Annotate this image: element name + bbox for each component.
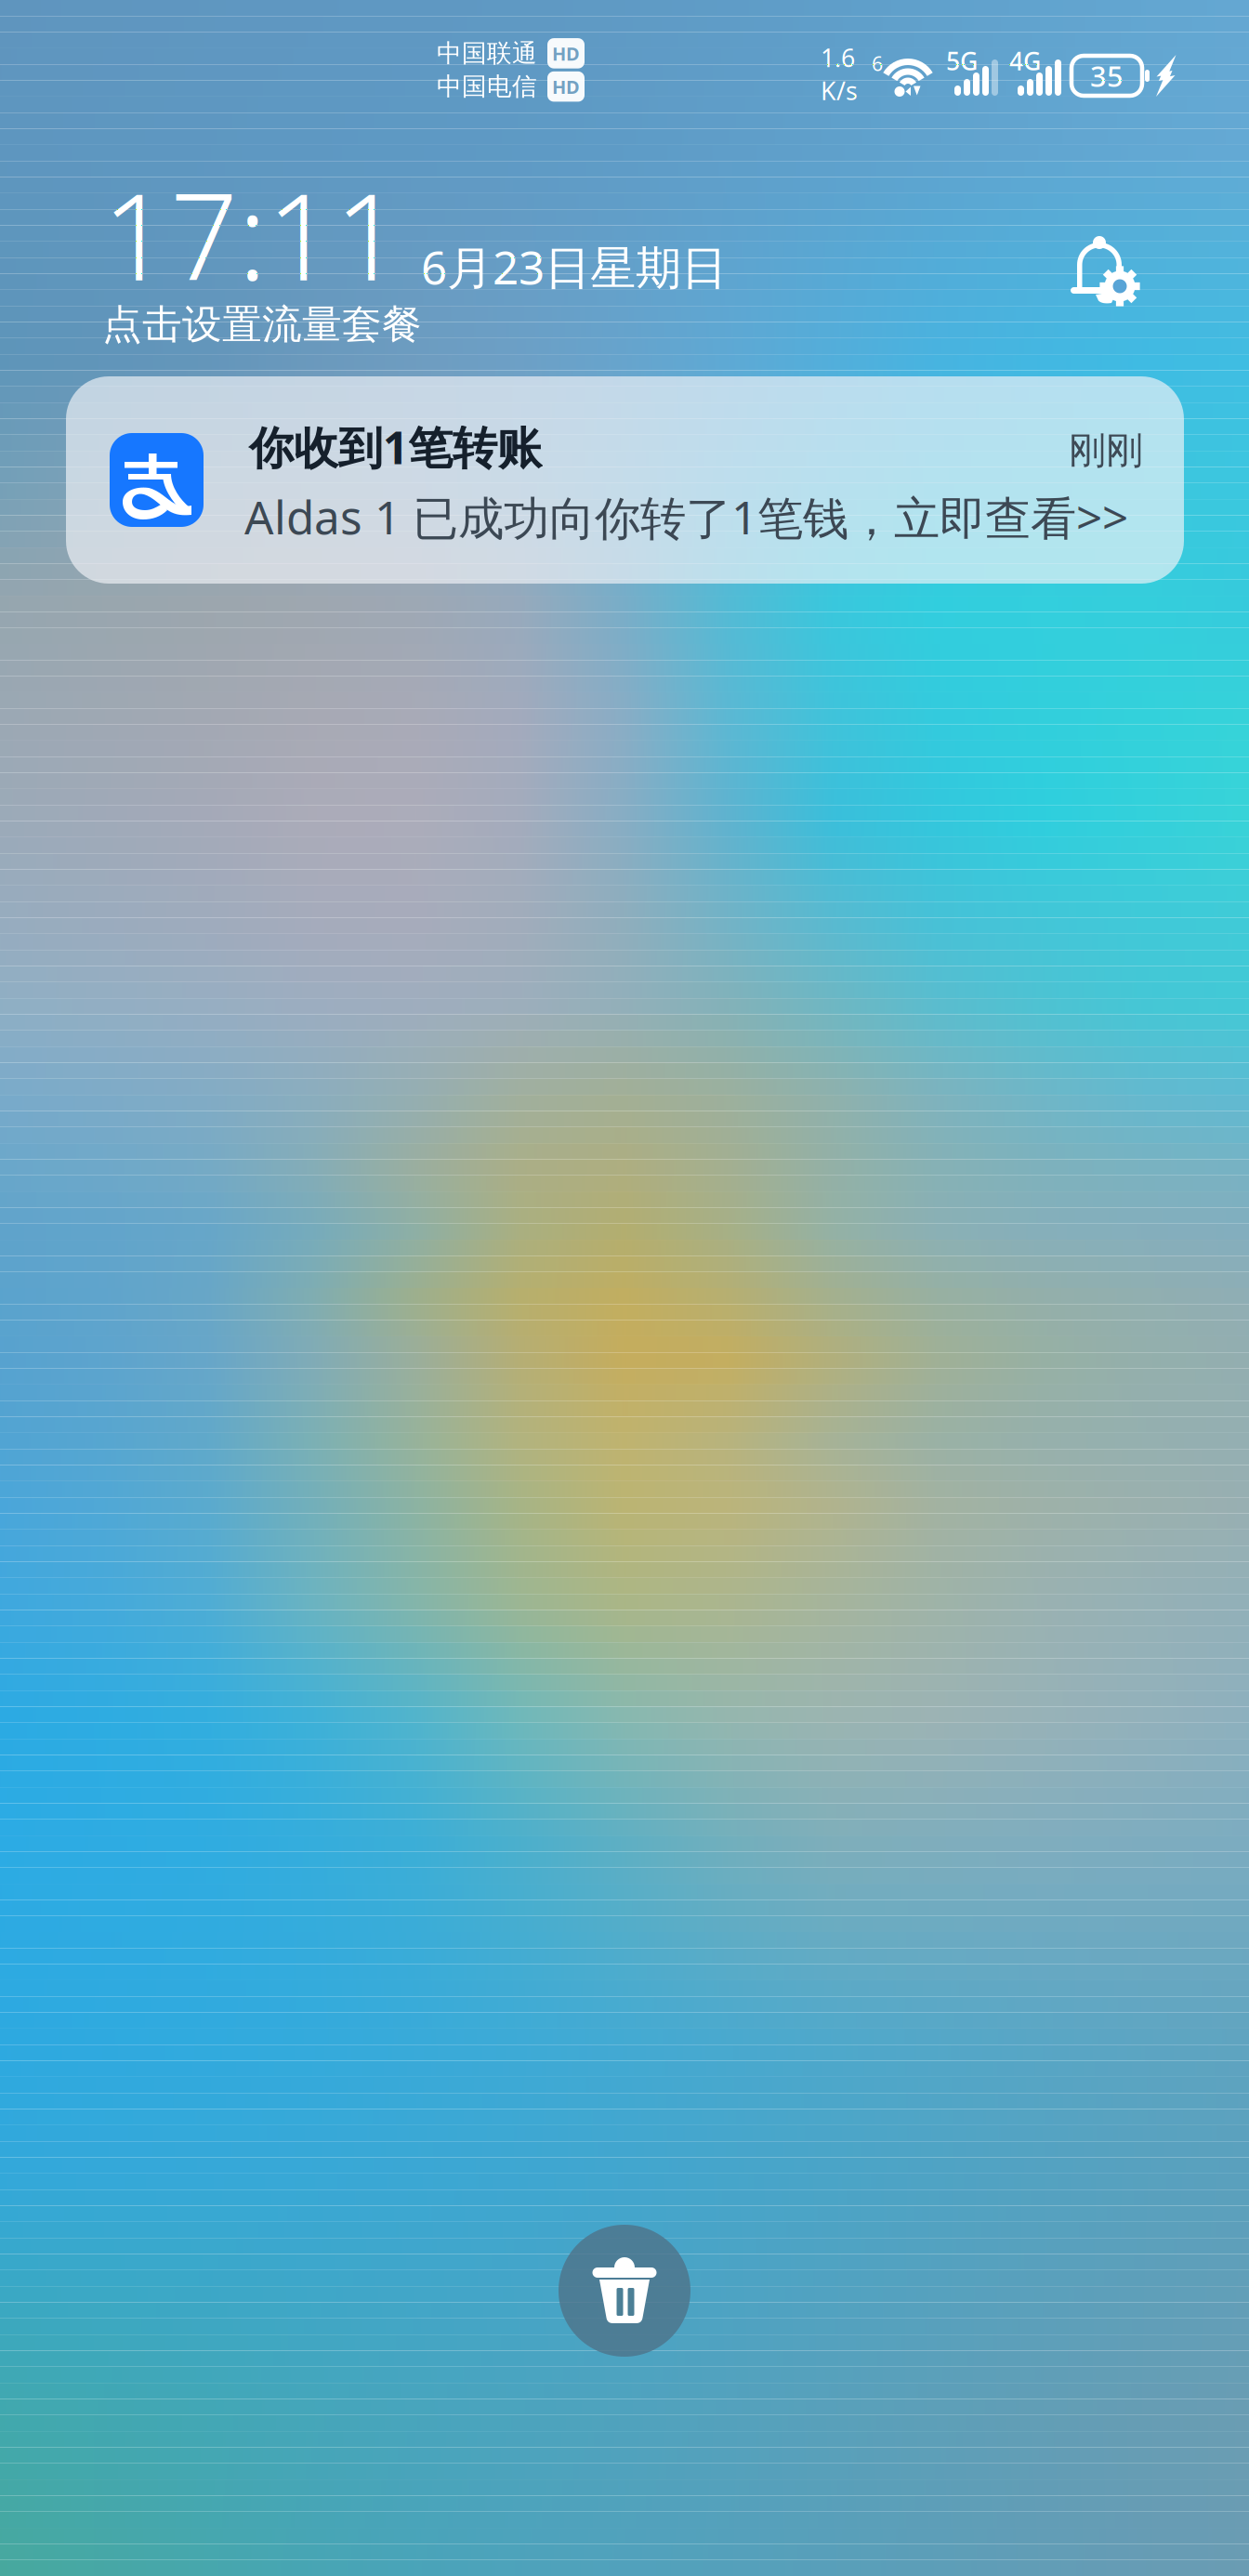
button[interactable]: Clear notifications <box>559 2225 690 2357</box>
staticText: HD <box>552 41 580 66</box>
button[interactable]: Notification settings <box>1071 237 1140 307</box>
staticText: 6月23日星期日 <box>421 236 727 297</box>
staticText: 中国联通 <box>437 38 537 69</box>
staticText: 35 <box>1090 57 1124 95</box>
staticText: 6 <box>872 50 883 76</box>
staticText: 你收到1笔转账 <box>249 417 542 476</box>
staticText: 4G <box>1009 44 1041 77</box>
staticText: 点击设置流量套餐 <box>102 300 422 349</box>
staticText: 17:11 <box>102 155 402 313</box>
staticText: 刚刚 <box>1069 427 1143 473</box>
staticText: HD <box>552 74 580 99</box>
staticText: K/s <box>821 74 858 107</box>
staticText: Aldas 1 已成功向你转了1笔钱，立即查看>> <box>244 486 1128 547</box>
staticText: 5G <box>946 44 978 77</box>
staticText: 中国电信 <box>437 71 537 102</box>
button[interactable]: 你收到1笔转账 <box>66 376 1184 584</box>
staticText: 1.6 <box>821 41 855 74</box>
